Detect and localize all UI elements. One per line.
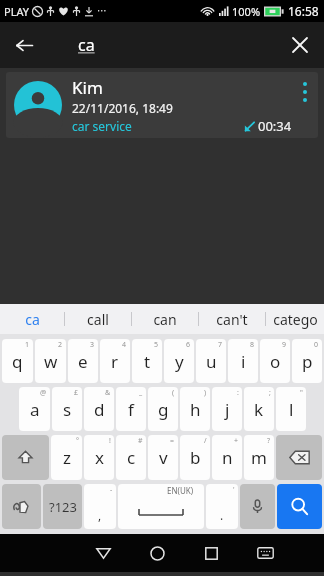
button[interactable]: _ bbox=[116, 387, 146, 431]
staticText: y bbox=[175, 350, 184, 373]
staticText: a bbox=[30, 398, 40, 421]
button[interactable]: ca bbox=[0, 304, 64, 334]
button[interactable]: " bbox=[276, 387, 306, 431]
staticText: v bbox=[159, 446, 168, 469]
button[interactable]: ? bbox=[244, 435, 274, 480]
staticText: h bbox=[190, 398, 201, 421]
button[interactable]: can't bbox=[199, 304, 265, 334]
button[interactable]: ( bbox=[148, 387, 178, 431]
staticText: : bbox=[237, 388, 239, 398]
button[interactable]: Back bbox=[76, 534, 130, 572]
button[interactable]: / bbox=[180, 435, 210, 480]
button[interactable]: Home bbox=[130, 534, 184, 572]
staticText: 5 bbox=[154, 340, 159, 350]
button[interactable]: 9 bbox=[260, 339, 290, 383]
button[interactable]: ca bbox=[48, 22, 276, 68]
staticText: 100% bbox=[232, 4, 261, 19]
staticText: call bbox=[87, 310, 109, 329]
button[interactable]: ° bbox=[51, 435, 82, 480]
button[interactable]: + bbox=[212, 435, 242, 480]
button[interactable]: ' bbox=[206, 484, 238, 529]
staticText: e bbox=[78, 350, 88, 373]
staticText: . bbox=[220, 507, 224, 523]
staticText: s bbox=[63, 398, 72, 421]
staticText: / bbox=[204, 436, 207, 446]
button[interactable]: 4 bbox=[100, 339, 130, 383]
button[interactable]: 5 bbox=[132, 339, 162, 383]
staticText: 9 bbox=[282, 340, 287, 350]
staticText: ?123 bbox=[49, 498, 77, 516]
staticText: u bbox=[206, 350, 217, 373]
staticText: f bbox=[128, 398, 134, 421]
staticText: ? bbox=[267, 436, 271, 446]
button[interactable]: 7 bbox=[196, 339, 226, 383]
button[interactable]: Back bbox=[0, 22, 48, 68]
button[interactable]: & bbox=[84, 387, 114, 431]
button[interactable]: - bbox=[84, 484, 116, 529]
staticText: - bbox=[110, 485, 113, 495]
button[interactable]: Hide keyboard bbox=[238, 534, 292, 572]
staticText: ; bbox=[269, 388, 271, 398]
button[interactable]: 6 bbox=[164, 339, 194, 383]
staticText: 1 bbox=[25, 340, 30, 350]
button[interactable]: Handwriting bbox=[2, 484, 41, 529]
staticText: Kim bbox=[72, 76, 103, 99]
button[interactable]: 1 bbox=[2, 339, 33, 383]
staticText: 00:34 bbox=[258, 117, 292, 135]
button[interactable]: # bbox=[116, 435, 146, 480]
button[interactable]: 3 bbox=[68, 339, 98, 383]
staticText: + bbox=[234, 436, 239, 446]
staticText: can't bbox=[216, 310, 248, 329]
staticText: 3 bbox=[90, 340, 95, 350]
staticText: g bbox=[158, 398, 169, 421]
button[interactable]: ?123 bbox=[43, 484, 82, 529]
button[interactable]: Space bbox=[118, 484, 204, 529]
staticText: car service bbox=[72, 118, 132, 134]
staticText: 0 bbox=[314, 340, 319, 350]
staticText: ! bbox=[109, 436, 111, 446]
staticText: 6 bbox=[186, 340, 191, 350]
staticText: ca bbox=[78, 34, 95, 56]
staticText: 16:58 bbox=[288, 3, 319, 19]
staticText: x bbox=[95, 446, 104, 469]
button[interactable]: Clear search bbox=[276, 22, 324, 68]
staticText: m bbox=[251, 446, 267, 469]
button[interactable]: Search bbox=[277, 484, 322, 529]
staticText: catego bbox=[273, 310, 318, 329]
button[interactable]: 0 bbox=[292, 339, 322, 383]
staticText: PLAY bbox=[4, 4, 30, 19]
staticText: r bbox=[111, 350, 119, 373]
button[interactable]: call bbox=[65, 304, 131, 334]
button[interactable]: Recent apps bbox=[184, 534, 238, 572]
button[interactable]: @ bbox=[19, 387, 50, 431]
button[interactable]: ! bbox=[84, 435, 114, 480]
button[interactable]: More options bbox=[292, 72, 318, 138]
button[interactable]: 2 bbox=[35, 339, 66, 383]
staticText: b bbox=[190, 446, 201, 469]
button[interactable]: ) bbox=[180, 387, 210, 431]
staticText: = bbox=[170, 436, 175, 446]
button[interactable]: : bbox=[212, 387, 242, 431]
staticText: EN(UK) bbox=[167, 485, 194, 496]
button[interactable]: Backspace bbox=[276, 435, 322, 480]
staticText: _ bbox=[139, 388, 143, 398]
button[interactable]: Shift bbox=[2, 435, 49, 480]
staticText: 4 bbox=[122, 340, 127, 350]
button[interactable]: catego bbox=[266, 304, 324, 334]
staticText: c bbox=[127, 446, 136, 469]
staticText: " bbox=[300, 388, 303, 398]
button[interactable]: = bbox=[148, 435, 178, 480]
staticText: w bbox=[44, 350, 58, 373]
button[interactable]: Kim bbox=[6, 72, 318, 138]
staticText: ( bbox=[172, 388, 175, 398]
button[interactable]: ; bbox=[244, 387, 274, 431]
staticText: # bbox=[138, 436, 143, 446]
staticText: 2 bbox=[58, 340, 63, 350]
button[interactable]: 8 bbox=[228, 339, 258, 383]
staticText: ' bbox=[233, 485, 235, 495]
staticText: , bbox=[98, 507, 102, 523]
staticText: ) bbox=[204, 388, 207, 398]
button[interactable]: can bbox=[132, 304, 198, 334]
button[interactable]: Voice input bbox=[240, 484, 275, 529]
button[interactable]: £ bbox=[52, 387, 82, 431]
